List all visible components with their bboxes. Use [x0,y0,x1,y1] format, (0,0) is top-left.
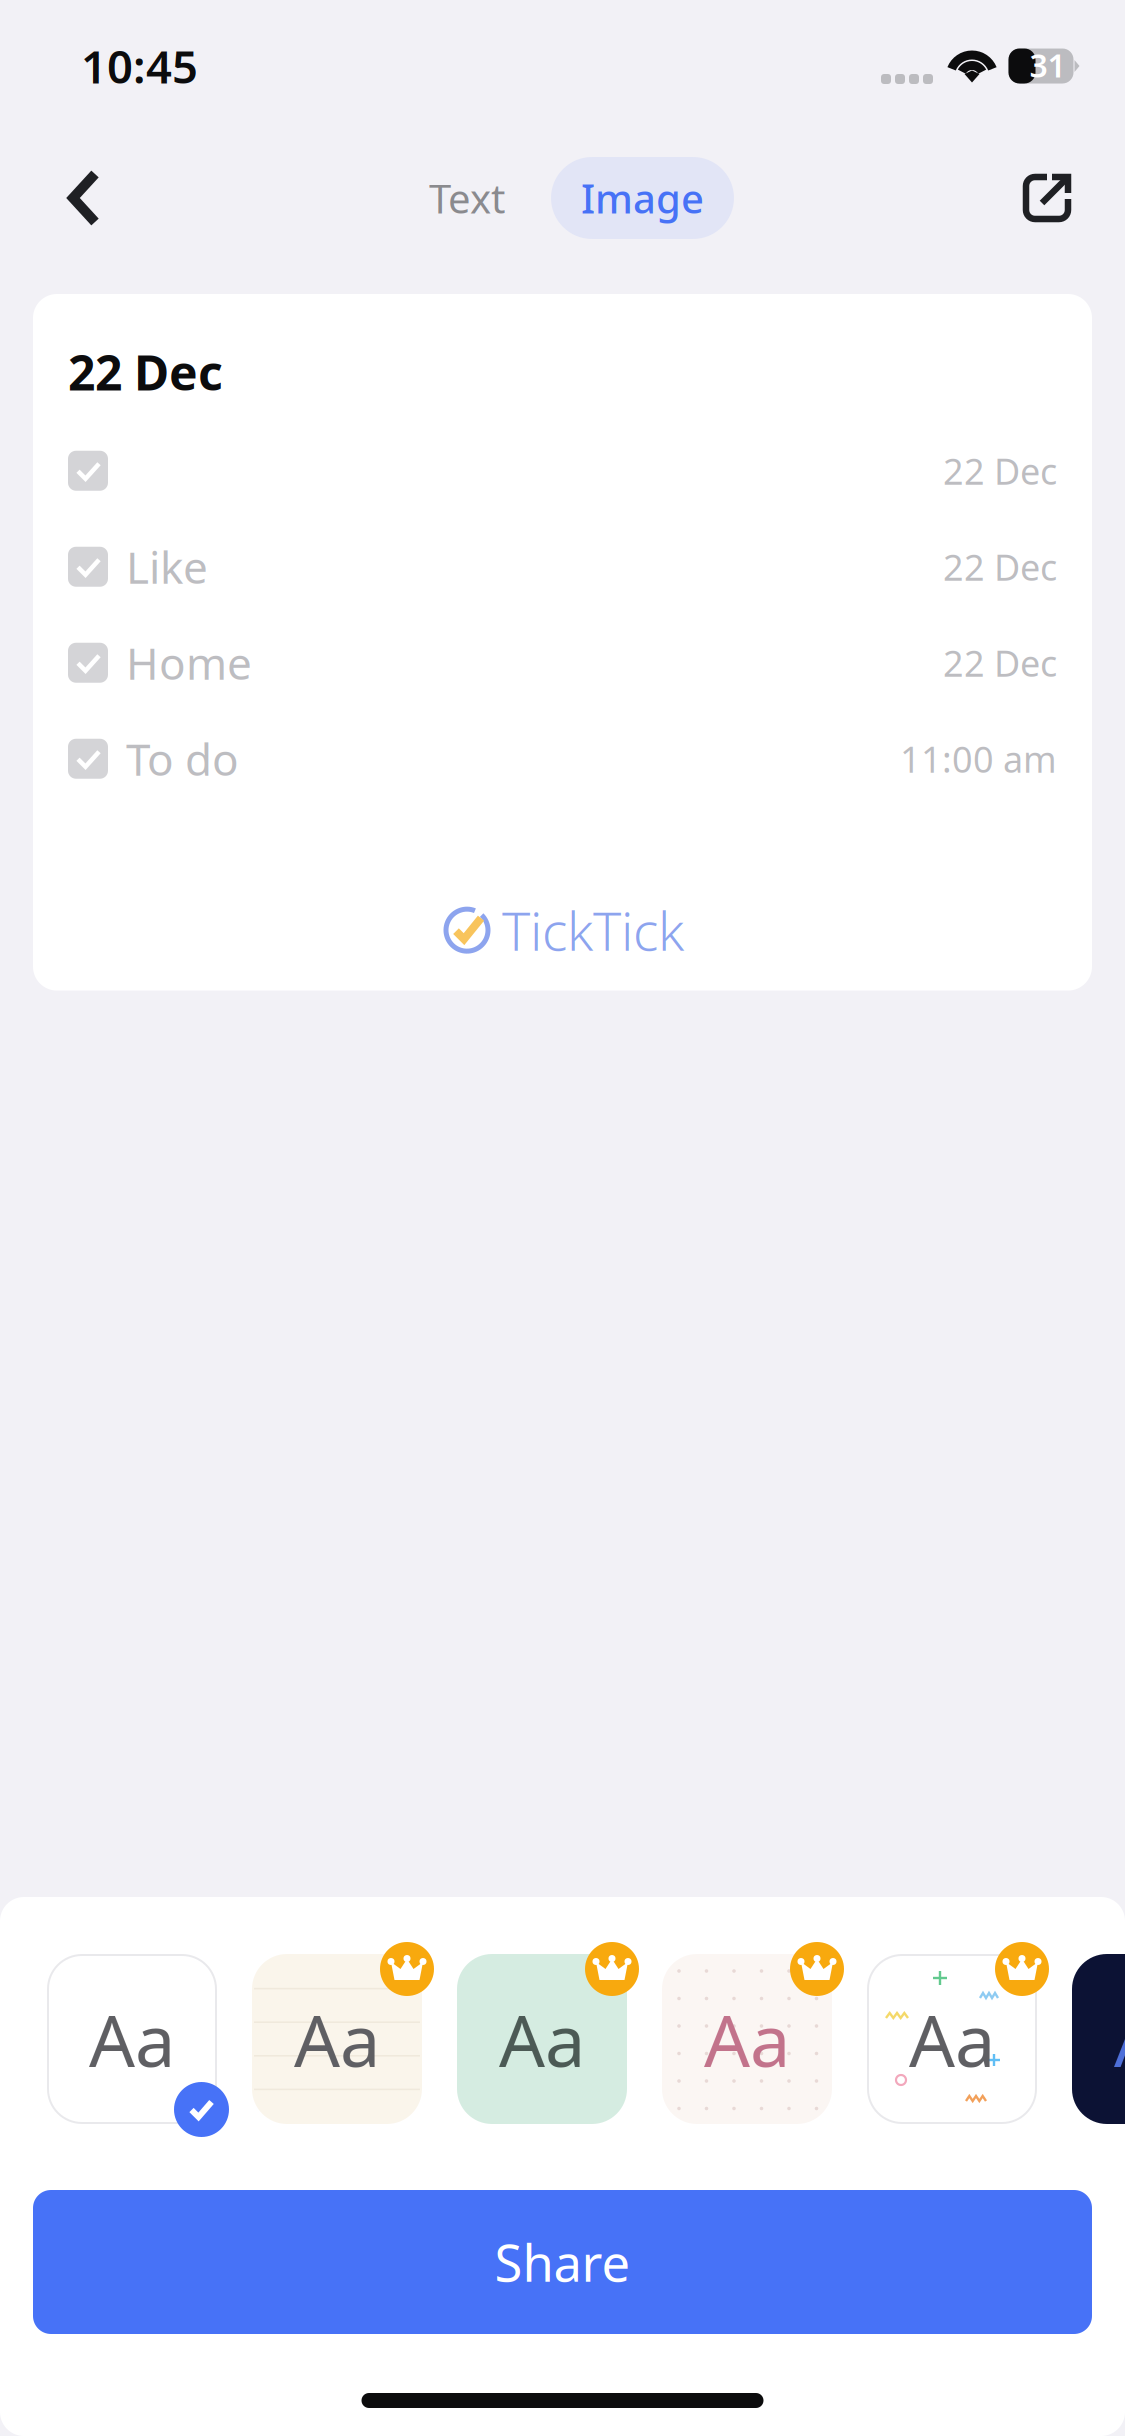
staticText: Image [581,171,704,224]
staticText: Aa [89,1991,175,2087]
staticText: 22 Dec [68,340,223,404]
button[interactable]: Dark style [1073,1955,1125,2123]
staticText: Aa [1114,1991,1125,2087]
staticText: Aa [909,1991,995,2087]
staticText: Share [494,2228,630,2296]
staticText: 22 Dec [943,639,1057,687]
staticText: 11:00 am [900,735,1057,783]
staticText: Text [429,171,505,224]
staticText: Aa [704,1991,790,2087]
staticText: 10:45 [81,36,198,96]
button[interactable]: Export [999,143,1095,253]
staticText: Aa [294,1991,380,2087]
button[interactable]: Dots style, premium [663,1955,831,2123]
staticText: 31 [1029,44,1065,86]
button[interactable]: Back [36,143,132,253]
button[interactable]: Mint style, premium [458,1955,626,2123]
staticText: Aa [499,1991,585,2087]
staticText: 22 Dec [943,543,1057,591]
staticText: To do [126,729,239,788]
staticText: 22 Dec [943,447,1057,495]
staticText: Home [126,633,252,692]
button[interactable]: Text [405,157,529,239]
button[interactable]: Share [33,2190,1092,2334]
button[interactable]: Plain style, selected [48,1955,216,2123]
staticText: Like [126,537,208,596]
staticText: TickTick [502,895,684,965]
button[interactable]: Notebook style, premium [253,1955,421,2123]
button[interactable]: Confetti style, premium [868,1955,1036,2123]
button[interactable]: Image [551,157,734,239]
